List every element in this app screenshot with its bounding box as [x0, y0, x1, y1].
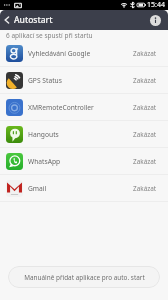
staticText: Gmail — [28, 184, 47, 193]
button[interactable]: Zakázat — [128, 180, 162, 197]
staticText: Manuálně přidat aplikace pro auto. start — [24, 273, 145, 282]
staticText: WhatsApp — [28, 157, 61, 166]
button[interactable]: Back — [0, 10, 14, 30]
button[interactable]: Manuálně přidat aplikace pro auto. start — [8, 266, 160, 288]
staticText: Zakázat — [133, 130, 157, 139]
button[interactable]: Zakázat — [128, 45, 162, 62]
button[interactable]: Info — [145, 10, 165, 30]
staticText: Vyhledávání Google — [28, 49, 91, 58]
staticText: XMRemoteController — [28, 103, 94, 112]
staticText: GPS Status — [28, 76, 62, 85]
staticText: 6 aplikací se spustí při startu — [6, 31, 93, 40]
staticText: Zakázat — [133, 157, 157, 166]
button[interactable]: WhatsApp — [0, 148, 168, 175]
button[interactable]: Zakázat — [128, 153, 162, 170]
button[interactable]: XMRemoteController — [0, 94, 168, 121]
staticText: Zakázat — [133, 76, 157, 85]
button[interactable]: Gmail — [0, 175, 168, 202]
button[interactable]: Zakázat — [128, 72, 162, 89]
staticText: Zakázat — [133, 103, 157, 112]
staticText: 15:44 — [147, 0, 165, 10]
staticText: Autostart — [14, 14, 53, 26]
button[interactable]: GPS Status — [0, 67, 168, 94]
button[interactable]: Zakázat — [128, 99, 162, 116]
staticText: Hangouts — [28, 130, 59, 139]
button[interactable]: Zakázat — [128, 126, 162, 143]
staticText: Zakázat — [133, 184, 157, 193]
staticText: Zakázat — [133, 49, 157, 58]
button[interactable]: Vyhledávání Google — [0, 40, 168, 67]
button[interactable]: Hangouts — [0, 121, 168, 148]
